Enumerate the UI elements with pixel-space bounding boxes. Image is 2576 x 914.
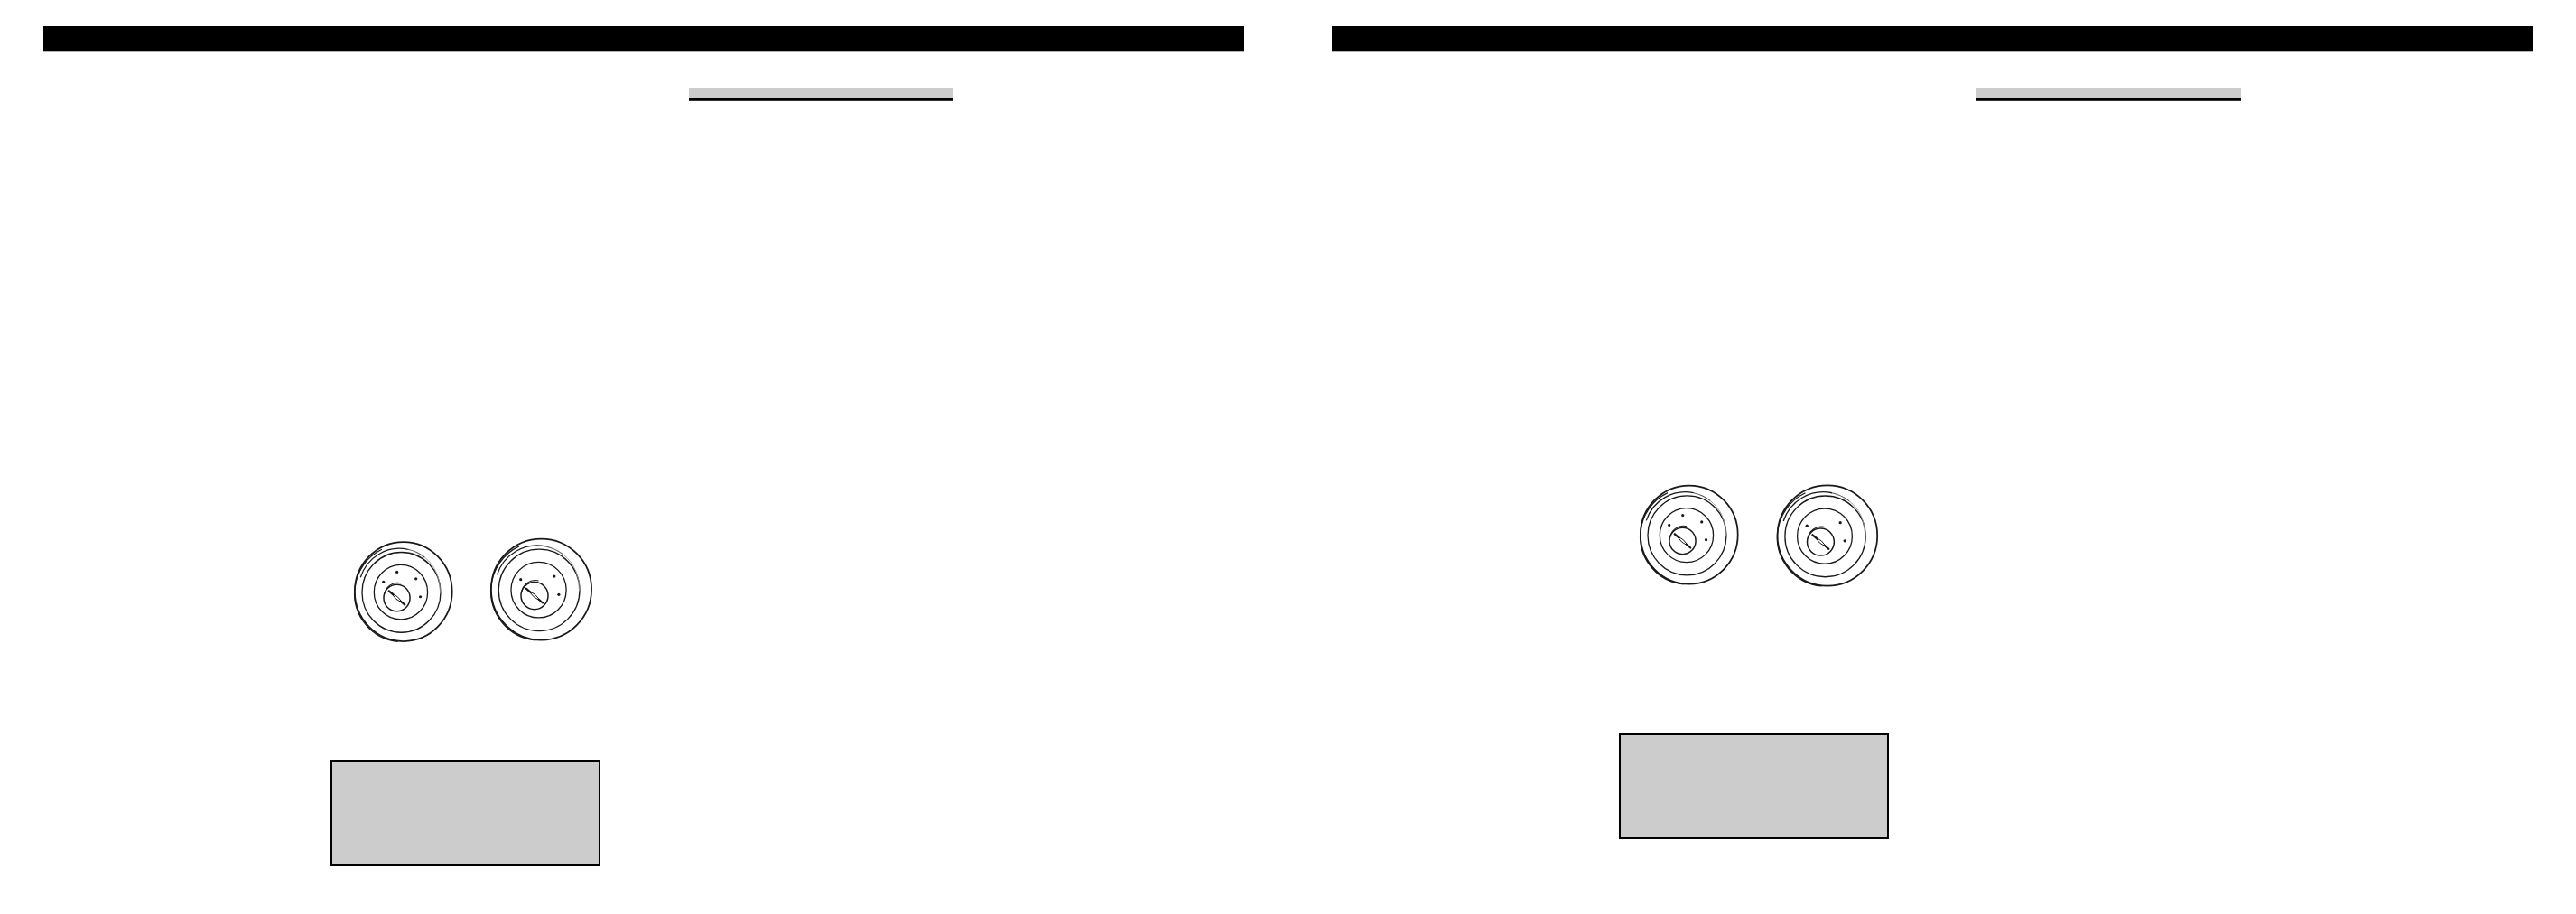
button[interactable]: Figure caption, left page [689,88,953,101]
button[interactable]: Figure caption, right page [1976,88,2241,101]
button[interactable]: Dial gauge one, left page [355,542,452,641]
button[interactable]: Header rule, left page [43,26,1244,51]
button[interactable]: Dial gauge one, right page [1641,486,1738,584]
button[interactable]: Illustration panel, left page [330,760,600,866]
button[interactable]: Dial gauge two, left page [491,539,591,640]
button[interactable]: Dial gauge two, right page [1778,485,1878,585]
button[interactable]: Illustration panel, right page [1619,733,1889,839]
button[interactable]: Header rule, right page [1332,26,2533,51]
